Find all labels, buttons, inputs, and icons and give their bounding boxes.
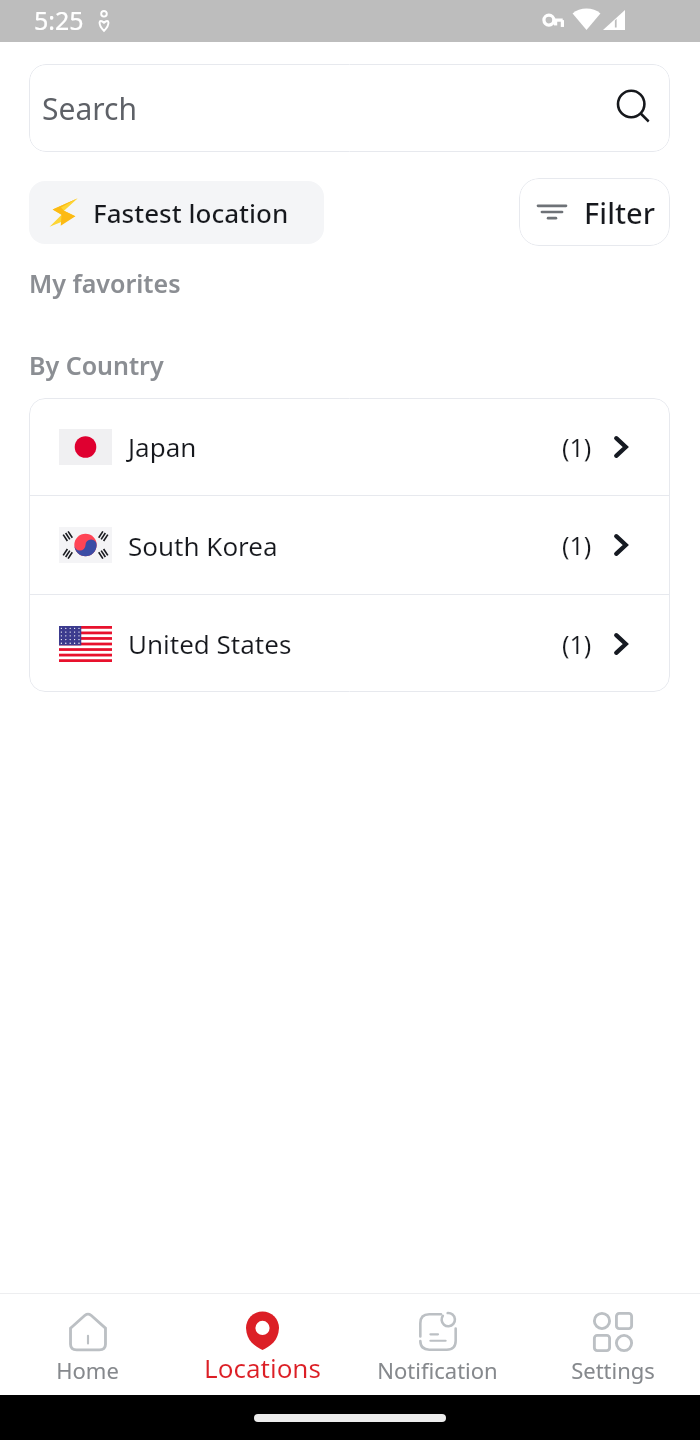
staticText: South Korea [128, 528, 278, 563]
button[interactable]: Search [29, 64, 670, 152]
staticText: 5:25 [34, 3, 84, 37]
staticText: United States [128, 626, 292, 661]
button[interactable]: South Korea [29, 496, 670, 594]
staticText: By Country [29, 348, 164, 382]
button[interactable]: United States [29, 595, 670, 692]
button[interactable]: Locations [175, 1294, 350, 1395]
staticText: Home [56, 1355, 119, 1385]
staticText: (1) [562, 627, 592, 661]
staticText: Search [42, 88, 137, 129]
staticText: (1) [562, 528, 592, 562]
button[interactable]: Notification [350, 1294, 525, 1395]
button[interactable]: Japan [29, 398, 670, 495]
button[interactable]: Fastest location [29, 181, 324, 244]
button[interactable]: Filter [519, 178, 670, 246]
staticText: Japan [128, 429, 197, 464]
staticText: Fastest location [93, 195, 289, 230]
staticText: Locations [204, 1350, 321, 1385]
other: Status indicator [97, 10, 111, 32]
staticText: (1) [562, 430, 592, 464]
staticText: Settings [571, 1355, 655, 1385]
button[interactable]: Home [0, 1294, 175, 1395]
staticText: Filter [584, 193, 655, 232]
button[interactable]: Settings [525, 1294, 700, 1395]
button[interactable]: Search [614, 88, 654, 128]
staticText: Notification [377, 1355, 498, 1385]
staticText: My favorites [29, 266, 181, 300]
